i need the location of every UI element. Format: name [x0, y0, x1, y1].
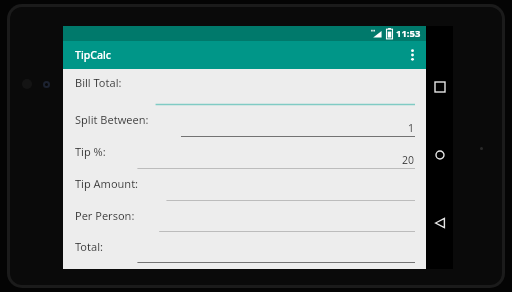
- button[interactable]: Per Person:: [63, 202, 426, 233]
- staticText: 11:53: [396, 27, 421, 40]
- button[interactable]: Split Between:: [63, 106, 426, 138]
- staticText: TipCalc: [75, 48, 111, 62]
- button[interactable]: Recent apps: [426, 73, 453, 100]
- button[interactable]: Back: [426, 209, 453, 236]
- button[interactable]: Total:: [63, 233, 426, 264]
- button[interactable]: Home: [426, 141, 453, 168]
- button[interactable]: Tip %:: [63, 138, 426, 170]
- button[interactable]: Bill Total:: [63, 69, 426, 106]
- staticText: 20: [402, 153, 415, 167]
- staticText: Tip Amount:: [75, 176, 139, 191]
- button[interactable]: More options: [398, 41, 426, 69]
- staticText: Bill Total:: [75, 75, 122, 90]
- staticText: Per Person:: [75, 208, 135, 223]
- staticText: Split Between:: [75, 112, 149, 127]
- staticText: Tip %:: [75, 144, 106, 159]
- button[interactable]: Tip Amount:: [63, 170, 426, 202]
- staticText: 1: [408, 121, 415, 135]
- staticText: Total:: [75, 239, 103, 254]
